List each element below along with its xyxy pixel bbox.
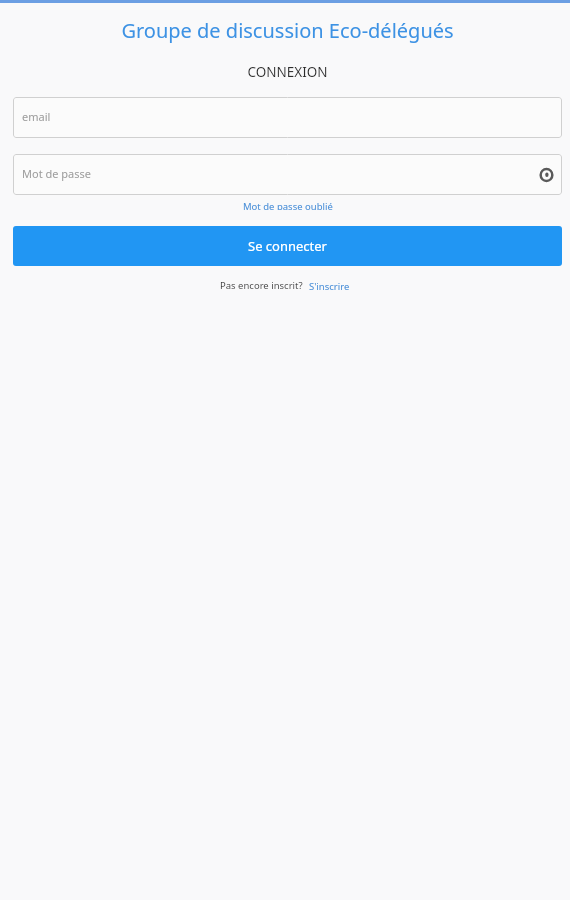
staticText: Mot de passe oublié xyxy=(243,200,333,210)
staticText: CONNEXION xyxy=(247,63,328,81)
button[interactable]: Mot de passe oublié xyxy=(239,196,337,214)
button[interactable]: email xyxy=(13,97,562,138)
button[interactable]: Se connecter xyxy=(13,226,562,266)
staticText: Groupe de discussion Eco-délégués xyxy=(121,17,454,43)
button[interactable]: Mot de passe xyxy=(13,154,562,195)
staticText: S'inscrire xyxy=(309,280,350,290)
button[interactable]: S'inscrire xyxy=(305,278,354,292)
staticText: Mot de passe xyxy=(22,166,91,181)
button[interactable]: Afficher le mot de passe xyxy=(534,163,558,187)
staticText: Pas encore inscrit? xyxy=(220,279,303,292)
staticText: email xyxy=(22,109,51,124)
staticText: Se connecter xyxy=(248,237,327,255)
